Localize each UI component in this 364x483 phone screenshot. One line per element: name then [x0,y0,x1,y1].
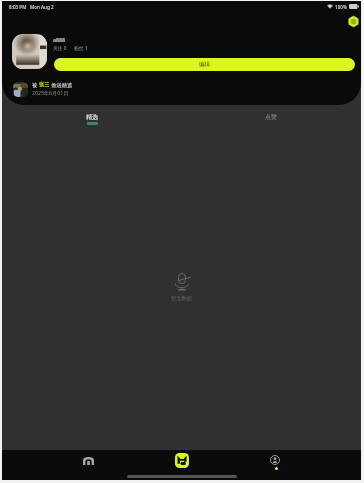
button[interactable]: 编辑 [54,58,355,71]
staticText: 被 [32,81,39,88]
staticText: a888 [53,36,65,43]
staticText: 推送精选 [50,81,73,88]
button[interactable]: Settings [346,14,361,29]
button[interactable]: 精选 [2,105,181,131]
staticText: 8:03 PM [9,4,27,10]
button[interactable]: Create [135,450,228,470]
staticText: 编辑 [199,61,210,68]
button[interactable]: Home [42,450,135,470]
staticText: 2025年6月01日 [32,89,69,96]
staticText: 粉丝 1 [74,45,88,52]
staticText: 关注 0 [53,45,67,52]
staticText: Mon Aug 2 [30,4,54,10]
button[interactable]: Profile [228,450,321,470]
staticText: 精选 [86,113,98,121]
staticText: 张三 [39,81,50,88]
staticText: 100% [335,4,347,10]
button[interactable] [12,34,47,69]
staticText: 暂无数据 [171,295,192,302]
staticText: 点赞 [265,113,277,121]
button[interactable] [13,82,28,97]
button[interactable]: 点赞 [181,105,361,131]
